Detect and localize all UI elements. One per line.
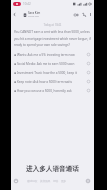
staticText: ▪ Keep note: Ask how a 5000 term waits: [14, 80, 86, 84]
staticText: Today at 10:42: [14, 23, 91, 27]
staticText: 进入多人语音通话: [26, 165, 79, 173]
staticText: ▪ Social Media: Ask me to earn 5000 soon: [14, 62, 86, 66]
button[interactable]: Call: [80, 11, 87, 18]
staticText: ▪ How you can use a 5000, honestly ask: [14, 89, 86, 93]
button[interactable]: Video call: [72, 11, 79, 18]
button[interactable]: Back: [11, 8, 18, 21]
staticText: 10:42: [23, 2, 31, 6]
button[interactable]: ▪ Investment Trust: how the a 5000, keep…: [14, 68, 91, 77]
staticText: You CANNOT earn a cent with less than 50…: [14, 30, 91, 47]
button[interactable]: ▪ Social Media: Ask me to earn 5000 soon: [14, 59, 91, 68]
staticText: ▪ Wants: Ask me a 5% investing term now: [14, 53, 86, 57]
button[interactable]: Emoji: [13, 178, 19, 184]
staticText: ▪ Investment Trust: how the a 5000, keep…: [14, 71, 86, 75]
staticText: online now: [28, 15, 39, 18]
staticText: 邀请好友 美音效果 报告 更多: [27, 179, 67, 183]
button[interactable]: ▪ How you can use a 5000, honestly ask: [14, 86, 91, 95]
button[interactable]: ▪ Wants: Ask me a 5% investing term now: [14, 50, 91, 59]
button[interactable]: More options: [87, 8, 94, 21]
button[interactable]: 进入多人语音通话: [11, 161, 94, 177]
staticText: Sara Kim: [28, 11, 41, 15]
button[interactable]: Settings: [85, 178, 91, 184]
button[interactable]: ▪ Keep note: Ask how a 5000 term waits: [14, 77, 91, 86]
